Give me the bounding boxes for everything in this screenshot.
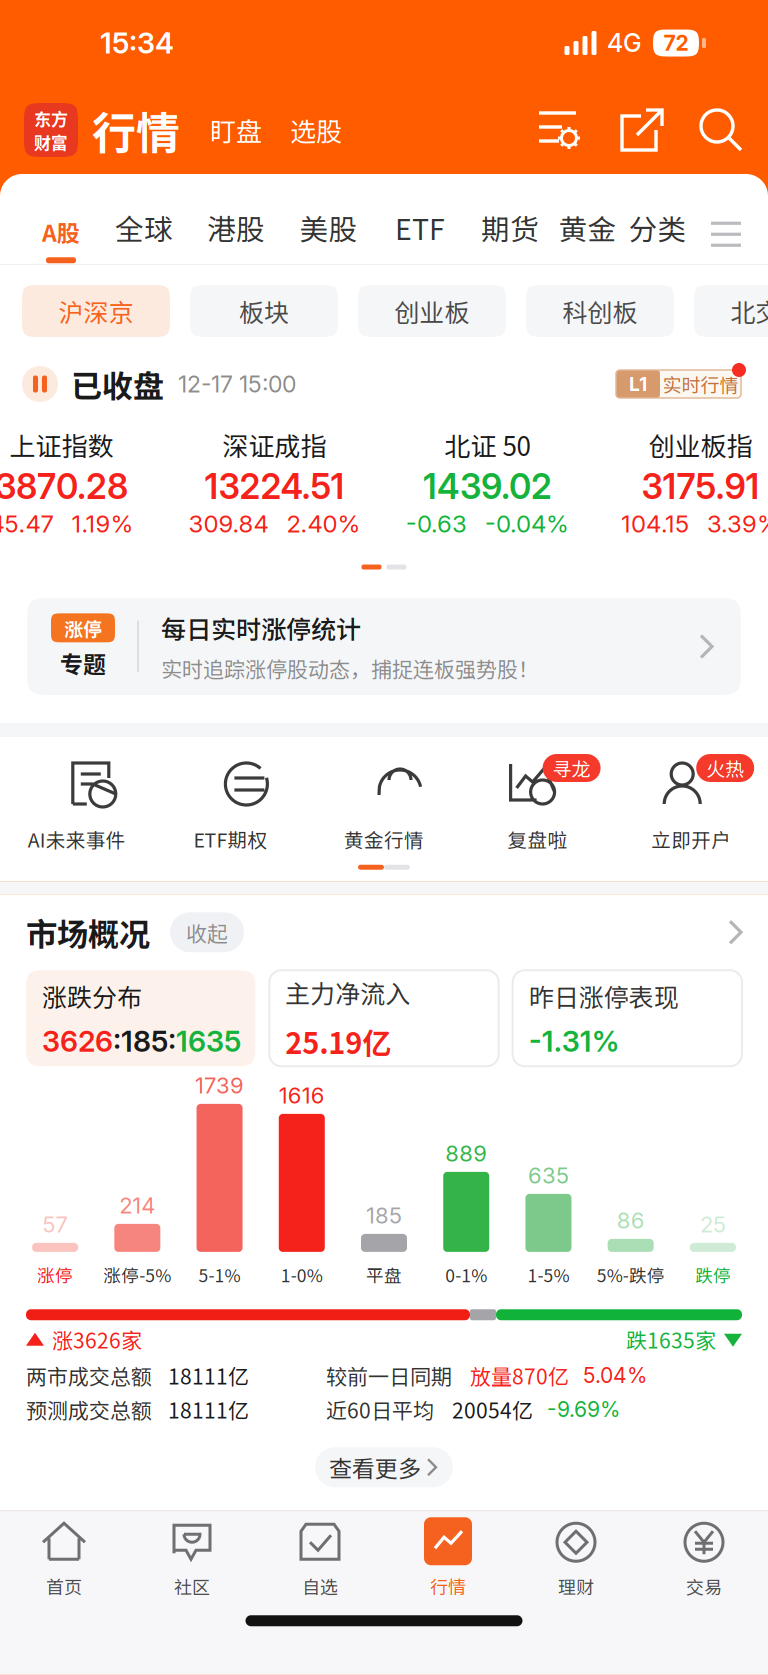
button[interactable]: Share [584,105,666,155]
staticText: 沪深京 [58,293,133,329]
button[interactable]: 首页 [0,1511,128,1605]
staticText: ETF [395,207,445,248]
staticText: 查看更多 [329,1451,421,1484]
staticText: 185 [366,1202,402,1229]
staticText: AI未来事件 [28,825,126,853]
button[interactable]: 科创板 [526,285,674,337]
button[interactable]: 理财 [512,1511,640,1605]
button[interactable]: 深证成指 [168,426,381,538]
button[interactable]: 创业板 [358,285,506,337]
staticText: 实时追踪涨停股动态，捕捉连板强势股！ [161,653,539,683]
staticText: 平盘 [366,1262,402,1287]
button[interactable]: 交易 [640,1511,768,1605]
staticText: 5.04% [583,1362,647,1388]
staticText: 13224.51 [204,465,344,507]
staticText: 5-1% [199,1262,241,1287]
button[interactable]: 黄金 [555,198,620,271]
button[interactable]: 昨日涨停表现 [513,970,742,1066]
button[interactable]: All categories [695,221,741,271]
staticText: 20054亿 [452,1394,533,1424]
staticText: 预测成交总额 [26,1394,152,1424]
staticText: 涨停-5% [103,1262,171,1287]
staticText: A股 [42,215,80,248]
button[interactable]: 自选 [256,1511,384,1605]
button[interactable]: AI未来事件 [0,751,154,853]
button[interactable]: Search [666,107,744,153]
staticText: :185: [113,1024,176,1059]
staticText: 收起 [186,917,228,947]
button[interactable]: 期货 [465,198,555,271]
button[interactable]: 黄金行情 [307,751,461,853]
staticText: 涨3626家 [52,1324,142,1354]
staticText: 18111亿 [168,1394,249,1424]
button[interactable]: 涨跌分布 [26,970,255,1066]
staticText: 5%-跌停 [597,1262,665,1287]
staticText: 较前一日同期 [326,1360,452,1390]
button[interactable]: 沪深京 [22,285,170,337]
staticText: 板块 [239,293,289,329]
button[interactable]: 北证 50 [381,426,594,538]
button[interactable]: 分类 [620,198,695,271]
staticText: 财富 [34,129,68,154]
button[interactable]: 主力净流入 [269,970,499,1066]
button[interactable]: ETF期权 [154,751,307,853]
staticText: 理财 [558,1573,594,1599]
staticText: 86 [617,1207,645,1234]
button[interactable]: 创业板指 [594,426,768,538]
staticText: 889 [445,1140,487,1167]
button[interactable]: A股 [24,205,98,271]
staticText: 深证成指 [222,426,326,463]
staticText: 北交所 [730,293,768,329]
staticText: 选股 [290,111,342,149]
staticText: 实时行情 [662,370,738,398]
button[interactable]: Market overview detail [728,919,744,945]
button[interactable]: 社区 [128,1511,256,1605]
button[interactable]: ETF [375,198,465,271]
staticText: 18111亿 [168,1360,249,1390]
staticText: L1 [629,372,647,396]
staticText: 盯盘 [210,111,262,149]
staticText: 上证指数 [9,426,113,463]
staticText: 1-5% [527,1262,569,1287]
button[interactable]: 全球 [98,198,190,271]
button[interactable]: 港股 [190,198,282,271]
staticText: 期货 [481,207,539,248]
staticText: 3870.28 [0,465,128,507]
staticText: 1439.02 [423,465,552,507]
staticText: 东方 [34,106,68,130]
button[interactable]: 火热 [614,751,768,853]
button[interactable]: 美股 [282,198,375,271]
button[interactable]: Filter settings [538,109,584,151]
staticText: 57 [43,1211,68,1238]
staticText: 主力净流入 [285,974,410,1010]
staticText: -0.04% [485,509,569,538]
staticText: 昨日涨停表现 [529,978,679,1014]
staticText: 2.40% [286,509,360,538]
staticText: 市场概况 [26,910,150,955]
staticText: 港股 [207,207,265,248]
staticText: 12-17 15:00 [178,370,296,398]
button[interactable]: 涨停 [0,581,768,723]
staticText: ETF期权 [193,825,267,853]
staticText: 北证 50 [444,426,530,463]
button[interactable]: 寻龙 [461,751,614,853]
staticText: 72 [663,30,688,56]
staticText: 涨停 [37,1262,73,1287]
button[interactable]: 收起 [150,912,244,952]
button[interactable]: 行情 [384,1511,512,1605]
button[interactable]: 北交所 [694,285,768,337]
staticText: 15:34 [100,26,174,60]
staticText: 214 [119,1192,155,1219]
staticText: 近60日平均 [326,1394,434,1424]
staticText: 黄金 [558,207,616,248]
button[interactable]: 查看更多 [315,1447,453,1487]
staticText: 45.47 [0,509,53,538]
staticText: 104.15 [621,509,689,538]
staticText: -1.31% [529,1024,620,1059]
staticText: 跌停 [695,1262,731,1287]
staticText: 美股 [299,207,357,248]
button[interactable]: 板块 [190,285,338,337]
button[interactable]: 上证指数 [0,426,168,538]
staticText: 交易 [686,1573,722,1599]
staticText: 创业板 [394,293,469,329]
